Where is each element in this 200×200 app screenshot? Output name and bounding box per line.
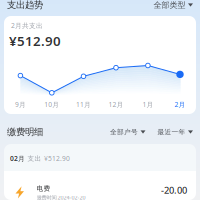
staticText: 全部类型: [153, 0, 185, 10]
staticText: ¥512.90: [44, 154, 70, 163]
staticText: 1月: [142, 100, 153, 109]
staticText: 缴费明细: [7, 126, 43, 138]
staticText: 最近一年: [157, 128, 185, 136]
button[interactable]: 全部类型: [153, 0, 193, 10]
staticText: 2月共支出: [11, 21, 43, 30]
staticText: 缴费时间 2024-02-20: [36, 194, 85, 200]
staticText: 2月: [174, 100, 185, 109]
button[interactable]: 最近一年: [157, 128, 193, 136]
staticText: 电费: [37, 184, 51, 193]
staticText: 支出: [27, 154, 41, 162]
staticText: ¥512.90: [9, 32, 61, 50]
staticText: 02月: [10, 154, 25, 163]
button[interactable]: 电费: [4, 172, 196, 200]
staticText: 12月: [108, 100, 123, 109]
staticText: 9月: [15, 100, 26, 109]
staticText: 全部户号: [110, 128, 138, 136]
staticText: -20.00: [161, 184, 187, 196]
button[interactable]: 全部户号: [110, 128, 145, 136]
staticText: 10月: [44, 100, 59, 109]
staticText: 11月: [76, 100, 91, 109]
staticText: 支出趋势: [7, 0, 43, 11]
